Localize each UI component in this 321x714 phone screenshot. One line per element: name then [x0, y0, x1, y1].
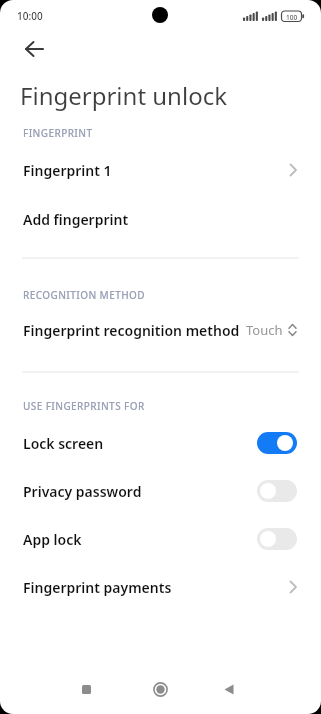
button[interactable] [18, 34, 50, 64]
staticText: Lock screen [23, 434, 104, 453]
staticText: App lock [23, 530, 82, 549]
staticText: 10:00 [17, 9, 43, 23]
staticText: Fingerprint recognition method [23, 321, 240, 340]
button[interactable]: Privacy password [0, 467, 321, 515]
staticText: Touch [246, 321, 283, 339]
button[interactable] [207, 667, 251, 711]
button[interactable]: Fingerprint payments [0, 563, 321, 611]
button[interactable] [138, 667, 182, 711]
staticText: 100 [286, 13, 298, 22]
staticText: RECOGNITION METHOD [23, 288, 146, 302]
staticText: Fingerprint unlock [20, 79, 227, 112]
button[interactable]: Lock screen [0, 419, 321, 467]
staticText: Privacy password [23, 482, 142, 501]
button[interactable] [257, 480, 297, 502]
button[interactable] [64, 667, 108, 711]
staticText: Fingerprint payments [23, 578, 172, 597]
button[interactable]: Fingerprint recognition method [0, 306, 321, 354]
staticText: Fingerprint 1 [23, 161, 112, 180]
button[interactable]: App lock [0, 515, 321, 563]
button[interactable] [257, 432, 297, 454]
staticText: Add fingerprint [23, 210, 129, 229]
button[interactable]: Add fingerprint [0, 195, 321, 243]
button[interactable]: Fingerprint 1 [0, 146, 321, 194]
button[interactable] [257, 528, 297, 550]
staticText: FINGERPRINT [23, 126, 93, 140]
staticText: USE FINGERPRINTS FOR [23, 399, 145, 413]
